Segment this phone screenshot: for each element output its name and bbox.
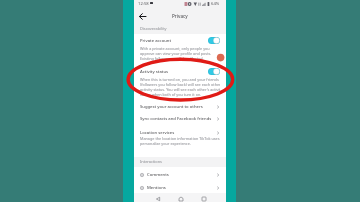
button[interactable]: Activity status [134,68,226,97]
staticText: Private account [140,38,208,44]
staticText: Mentions [147,185,216,191]
staticText: personalize your experience. [140,141,191,146]
staticText: 12:58 [138,1,149,7]
button[interactable]: Recents [199,194,208,202]
staticText: Comments [147,172,216,178]
staticText: Existing followers won't be affected. [140,56,204,61]
staticText: status when both of you turn it on. [140,92,202,97]
button[interactable]: Home [176,194,185,202]
staticText: Sync contacts and Facebook friends [140,116,216,122]
staticText: Suggest your account to others [140,104,216,110]
staticText: Activity status [140,69,208,75]
staticText: Location services [140,130,216,136]
button[interactable]: Toggle [208,37,220,44]
staticText: activity status. You will see each other… [140,87,220,92]
staticText: When this is turned on, you and your fri… [140,77,219,82]
staticText: With a private account, only people you [140,46,210,51]
staticText: approve can view your profile and posts. [140,51,212,56]
button[interactable]: Comments [134,172,226,178]
button[interactable]: Back [153,194,162,202]
staticText: Manage the location information TikTok u… [140,136,220,141]
button[interactable]: Mentions [134,185,226,191]
button[interactable]: Private account [134,37,226,61]
staticText: Interactions [140,159,162,164]
staticText: Discoverability [140,26,167,31]
staticText: Privacy [172,13,188,19]
staticText: (followers you follow back) will see eac… [140,82,220,87]
button[interactable]: Location services [134,130,226,146]
button[interactable]: Back [136,10,148,22]
button[interactable]: Sync contacts and Facebook friends [134,116,226,122]
staticText: 64% [211,1,220,7]
button[interactable]: Toggle [208,68,220,75]
button[interactable]: Suggest your account to others [134,104,226,110]
